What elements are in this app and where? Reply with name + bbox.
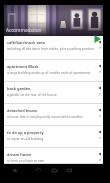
staticText: Accommodation bbox=[6, 27, 42, 33]
staticText: a garden at the rear of the house bbox=[7, 93, 57, 97]
staticText: café/bar/snack area bbox=[7, 40, 45, 45]
button[interactable]: Expand bbox=[98, 158, 102, 162]
staticText: a house that is not physically connected… bbox=[7, 115, 84, 119]
staticText: detached house bbox=[7, 108, 38, 113]
staticText: including all bar items from tables, plu… bbox=[7, 47, 94, 51]
button[interactable]: Play audio bbox=[98, 40, 102, 44]
staticText: to repair an old building bbox=[7, 137, 44, 141]
button[interactable]: Home bbox=[50, 166, 59, 175]
button[interactable]: Expand bbox=[98, 114, 102, 118]
button[interactable]: Play bbox=[93, 35, 101, 43]
button[interactable]: Back bbox=[34, 166, 42, 174]
staticText: back garden bbox=[7, 86, 31, 91]
button[interactable]: café/bar/snack area bbox=[4, 36, 103, 60]
button[interactable]: apartment Block bbox=[4, 60, 103, 82]
button[interactable]: Expand bbox=[98, 70, 102, 74]
button[interactable]: Play audio bbox=[98, 86, 102, 90]
button[interactable]: Keyboard bbox=[11, 166, 19, 174]
button[interactable]: Expand bbox=[98, 46, 102, 50]
button[interactable]: Recents bbox=[65, 166, 74, 175]
button[interactable]: Expand bbox=[98, 136, 102, 140]
button[interactable]: dream home bbox=[4, 148, 103, 164]
staticText: a large building made up of smaller unit… bbox=[7, 71, 91, 75]
button[interactable]: Play audio bbox=[98, 152, 102, 156]
staticText: dream home bbox=[7, 152, 32, 157]
button[interactable]: Play audio bbox=[98, 64, 102, 68]
staticText: to do up a property bbox=[7, 130, 44, 135]
button[interactable]: detached house bbox=[4, 104, 103, 126]
staticText: a home you hope to own bbox=[7, 159, 45, 163]
button[interactable]: to do up a property bbox=[4, 126, 103, 148]
button[interactable]: back garden bbox=[4, 82, 103, 104]
staticText: apartment Block bbox=[7, 64, 39, 69]
button[interactable]: Play audio bbox=[98, 108, 102, 112]
button[interactable]: Play audio bbox=[98, 130, 102, 134]
button[interactable]: Expand bbox=[98, 92, 102, 96]
